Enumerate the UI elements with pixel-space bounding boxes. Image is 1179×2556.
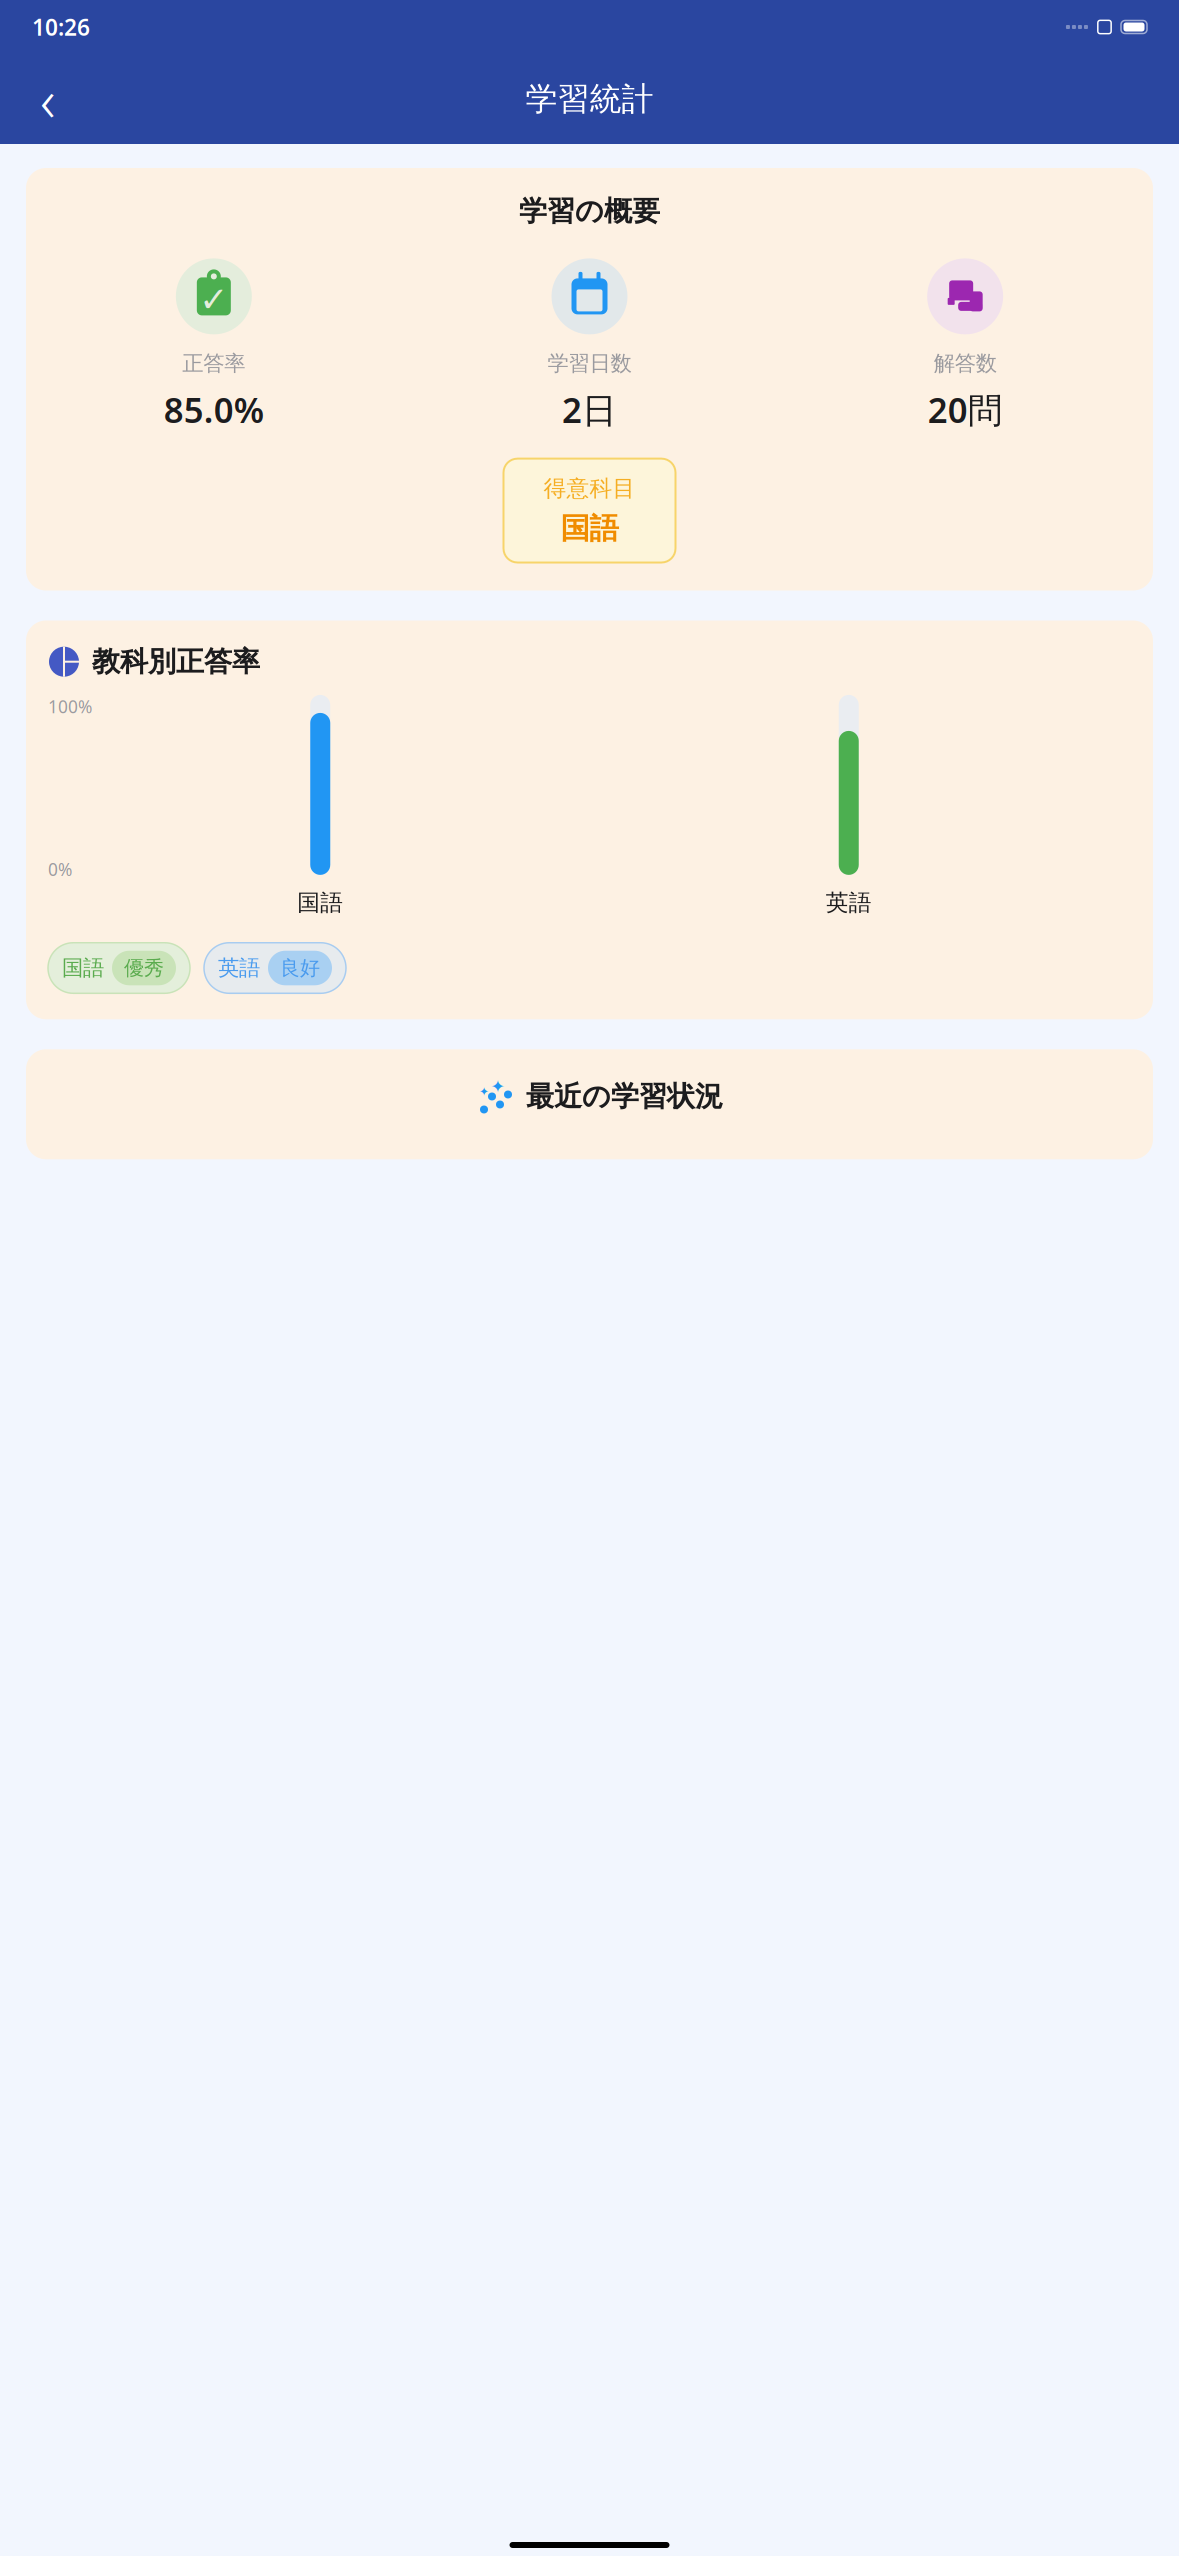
staticText: 国語 bbox=[297, 889, 343, 917]
button[interactable]: 得意科目 bbox=[503, 459, 675, 562]
staticText: ✦ bbox=[479, 1085, 489, 1098]
button[interactable]: 戻る bbox=[22, 73, 74, 125]
staticText: 10:26 bbox=[32, 12, 90, 42]
staticText: 100% bbox=[48, 695, 92, 718]
staticText: ✓ bbox=[199, 280, 228, 319]
button[interactable]: 国語 bbox=[48, 943, 190, 993]
staticText: ✦ bbox=[490, 1077, 505, 1096]
staticText: 優秀 bbox=[124, 956, 164, 980]
staticText: 英語 bbox=[218, 955, 260, 981]
staticText: 学習統計 bbox=[525, 79, 653, 119]
staticText: ‹ bbox=[40, 60, 56, 138]
staticText: 得意科目 bbox=[543, 475, 635, 502]
staticText: 英語 bbox=[826, 889, 872, 917]
staticText: 正答率 bbox=[182, 350, 245, 377]
staticText: 20問 bbox=[928, 387, 1003, 433]
staticText: 最近の学習状況 bbox=[526, 1079, 723, 1114]
staticText: 2日 bbox=[562, 387, 617, 433]
staticText: 85.0% bbox=[164, 387, 264, 433]
button[interactable]: 英語 bbox=[204, 943, 346, 993]
staticText: 良好 bbox=[280, 956, 320, 980]
staticText: 国語 bbox=[62, 955, 104, 981]
staticText: 0% bbox=[48, 858, 72, 881]
staticText: 教科別正答率 bbox=[92, 644, 260, 679]
staticText: 学習の概要 bbox=[519, 194, 660, 228]
staticText: 解答数 bbox=[934, 350, 997, 377]
staticText: 学習日数 bbox=[547, 350, 631, 377]
staticText: 国語 bbox=[560, 510, 618, 546]
